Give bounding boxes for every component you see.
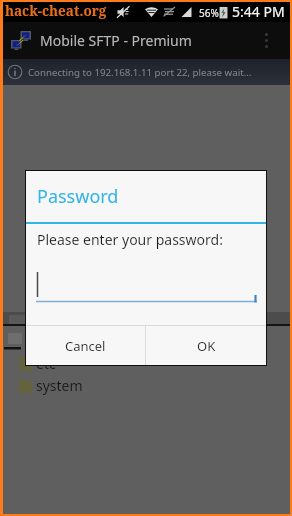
staticText: Mobile SFTP - Premium <box>40 31 192 50</box>
staticText: hack-cheat.org <box>5 2 107 20</box>
staticText: 56% <box>199 6 219 20</box>
staticText: / <box>28 312 33 326</box>
button[interactable]: system <box>3 374 290 396</box>
staticText: etc <box>36 354 56 373</box>
staticText: Connecting to 192.168.1.11 port 22, plea… <box>28 66 252 79</box>
staticText: Password <box>37 184 119 209</box>
button[interactable]: More options <box>253 22 279 59</box>
staticText: Cancel <box>65 337 106 355</box>
staticText: Please enter your password: <box>37 230 223 249</box>
button[interactable]: Cancel <box>26 326 145 365</box>
staticText: system <box>36 376 83 395</box>
button[interactable] <box>3 330 290 352</box>
staticText: OK <box>197 337 216 355</box>
button[interactable]: OK <box>146 326 266 365</box>
staticText: 5:44 PM <box>232 2 285 21</box>
button[interactable]: etc <box>3 352 290 374</box>
